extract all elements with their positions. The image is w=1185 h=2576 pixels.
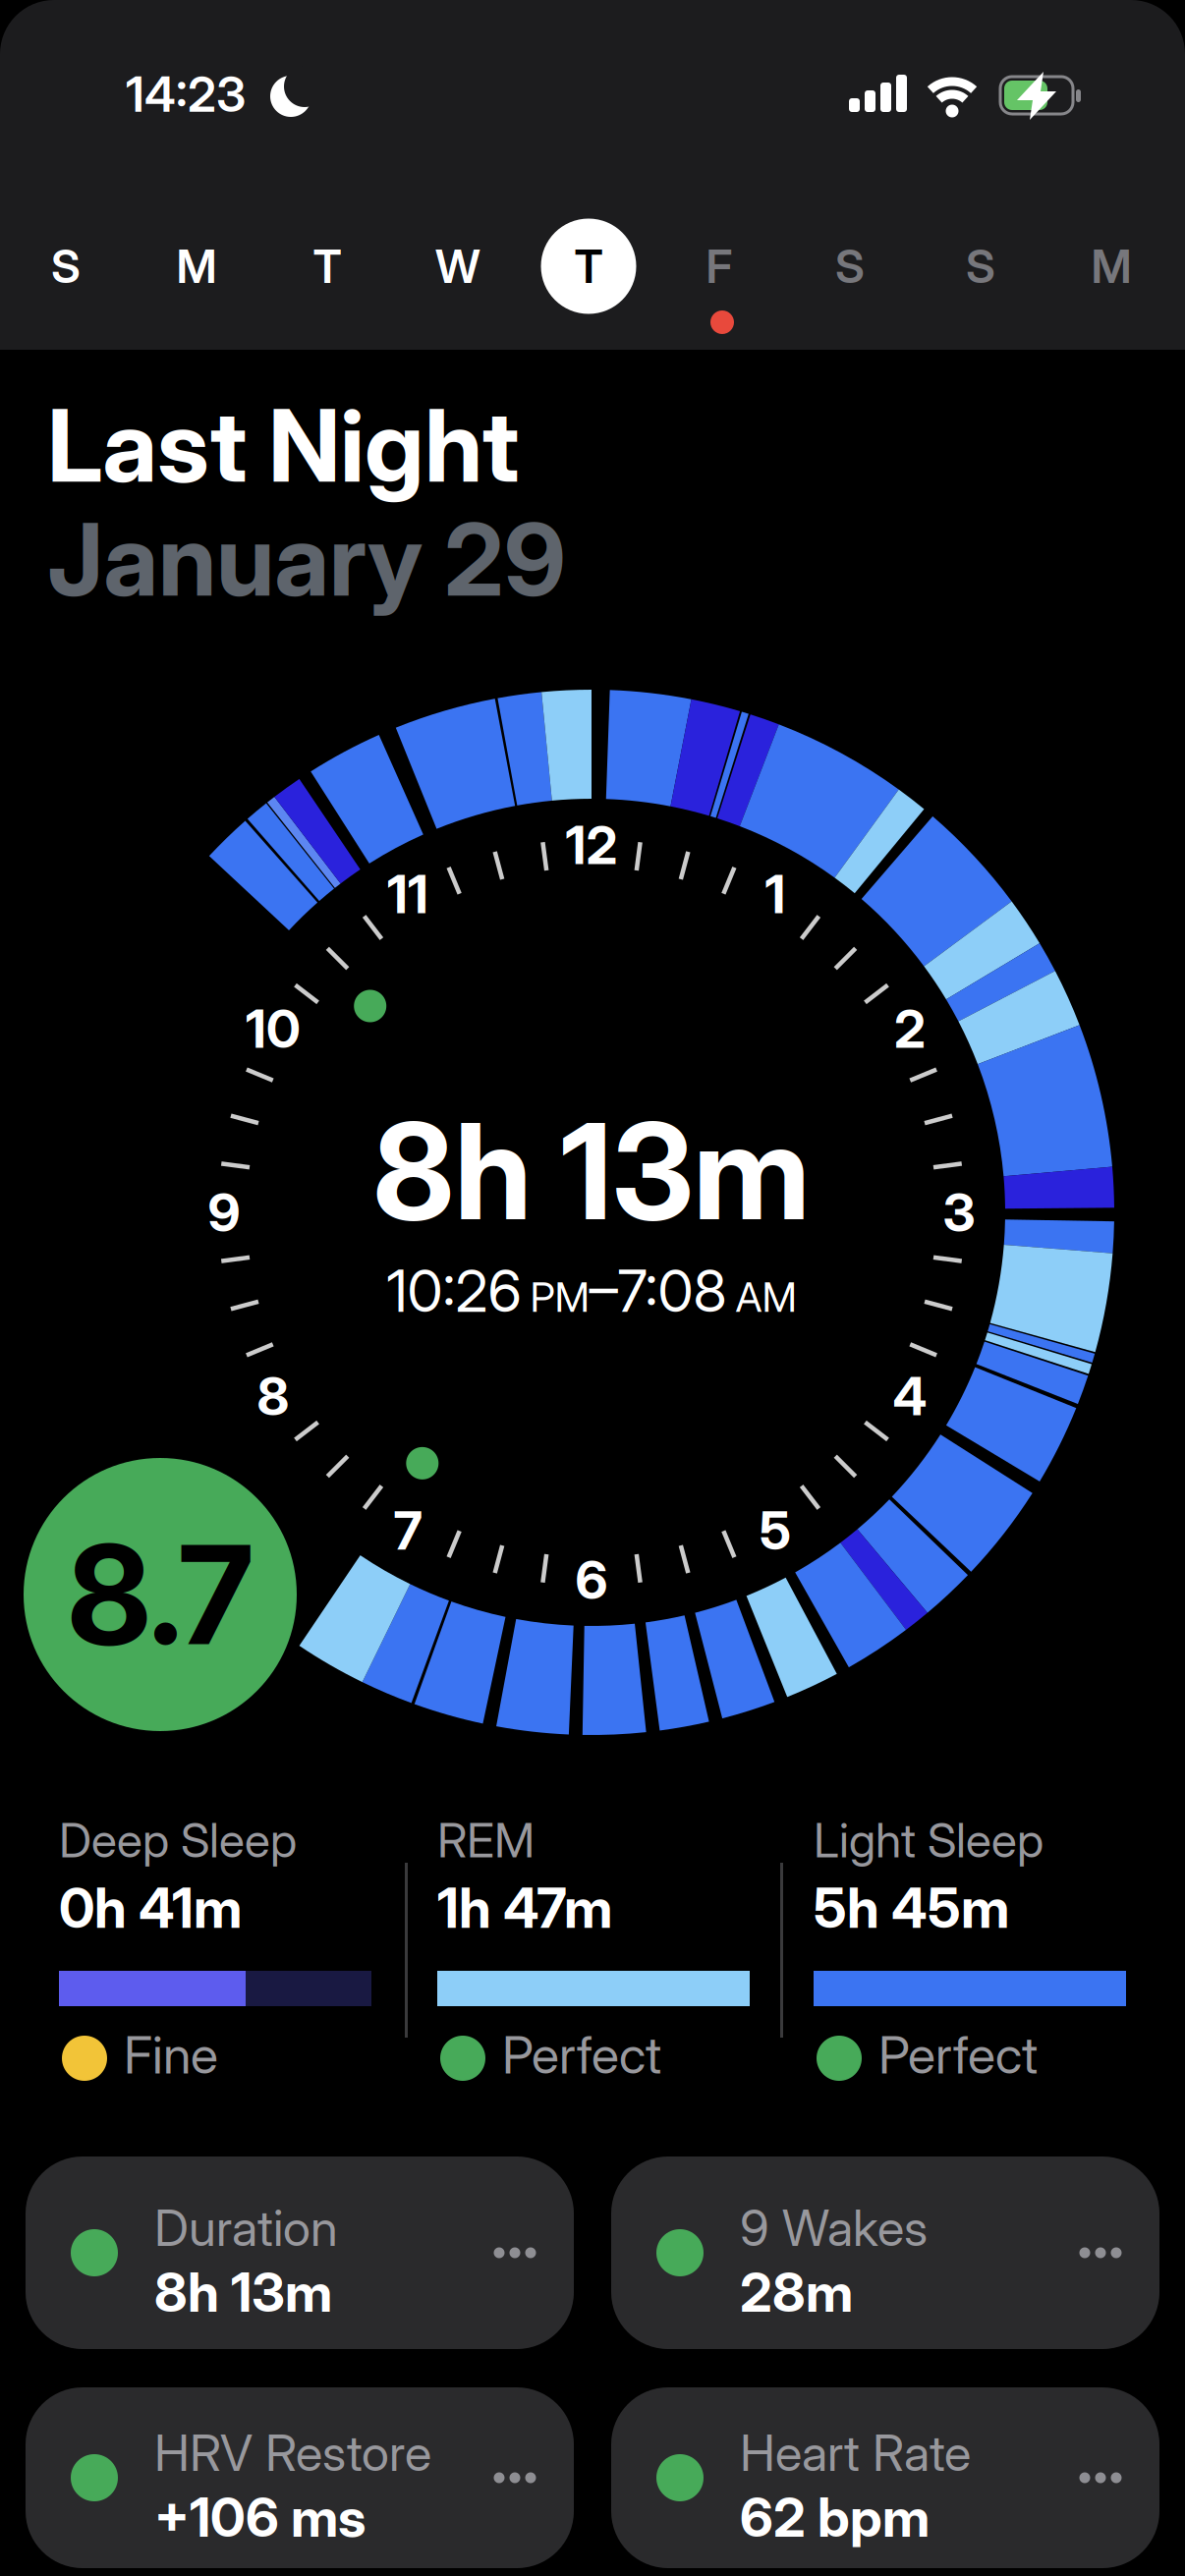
button[interactable]: Duration — [26, 2156, 574, 2349]
staticText: Perfect — [878, 2024, 1038, 2086]
staticText: S — [51, 239, 81, 294]
staticText: 8h 13m — [373, 1091, 810, 1251]
button[interactable]: More options for 9 Wakes — [1066, 2218, 1135, 2287]
button[interactable]: T — [273, 212, 381, 320]
button[interactable]: More options for Heart Rate — [1066, 2443, 1135, 2512]
button[interactable]: T — [535, 212, 643, 320]
button[interactable]: HRV Restore — [26, 2387, 574, 2568]
staticText: S — [835, 239, 865, 294]
staticText: 8h 13m — [154, 2260, 332, 2325]
staticText: Perfect — [502, 2024, 661, 2086]
staticText: Last Night — [47, 385, 519, 506]
staticText: 9 — [208, 1181, 240, 1244]
staticText: Duration — [154, 2198, 338, 2258]
button[interactable]: S — [796, 212, 904, 320]
button[interactable]: More options for Duration — [480, 2218, 549, 2287]
staticText: 0h 41m — [59, 1875, 242, 1941]
button[interactable]: S — [12, 212, 120, 320]
staticText: PM — [530, 1273, 589, 1322]
staticText: 8 — [257, 1364, 289, 1428]
staticText: January 29 — [47, 499, 566, 620]
staticText: M — [176, 239, 217, 294]
staticText: 5h 45m — [814, 1875, 1009, 1941]
staticText: Heart Rate — [740, 2423, 971, 2483]
staticText: 6 — [575, 1548, 608, 1611]
staticText: M — [1091, 239, 1131, 294]
staticText: T — [574, 239, 603, 294]
staticText: –7:08 — [589, 1256, 735, 1326]
button[interactable]: W — [404, 212, 512, 320]
staticText: S — [966, 239, 995, 294]
staticText: F — [706, 239, 733, 294]
staticText: 11 — [387, 862, 428, 926]
staticText: 10:26 — [387, 1256, 530, 1326]
button[interactable]: F — [665, 212, 773, 320]
button[interactable]: More options for HRV Restore — [480, 2443, 549, 2512]
staticText: 2 — [894, 997, 925, 1060]
staticText: REM — [437, 1812, 535, 1869]
staticText: +106 ms — [154, 2485, 366, 2550]
staticText: 7 — [394, 1499, 422, 1562]
staticText: T — [313, 239, 341, 294]
staticText: 1 — [765, 862, 786, 926]
staticText: 62 bpm — [740, 2485, 930, 2550]
staticText: 12 — [565, 813, 618, 877]
staticText: AM — [735, 1273, 796, 1322]
staticText: Fine — [124, 2024, 218, 2086]
staticText: Light Sleep — [814, 1812, 1044, 1869]
button[interactable]: Heart Rate — [611, 2387, 1159, 2568]
staticText: 5 — [760, 1499, 791, 1562]
staticText: 4 — [893, 1364, 927, 1428]
staticText: Deep Sleep — [59, 1812, 297, 1869]
staticText: 28m — [740, 2260, 853, 2325]
button[interactable]: M — [1057, 212, 1165, 320]
staticText: W — [435, 239, 480, 294]
staticText: 3 — [943, 1181, 975, 1244]
button[interactable]: 9 Wakes — [611, 2156, 1159, 2349]
button[interactable]: S — [927, 212, 1035, 320]
staticText: 10 — [246, 997, 301, 1060]
staticText: 8.7 — [67, 1512, 253, 1677]
staticText: HRV Restore — [154, 2423, 431, 2483]
staticText: 1h 47m — [437, 1875, 612, 1941]
staticText: 14:23 — [126, 65, 246, 123]
button[interactable]: M — [142, 212, 251, 320]
staticText: 9 Wakes — [740, 2198, 928, 2258]
